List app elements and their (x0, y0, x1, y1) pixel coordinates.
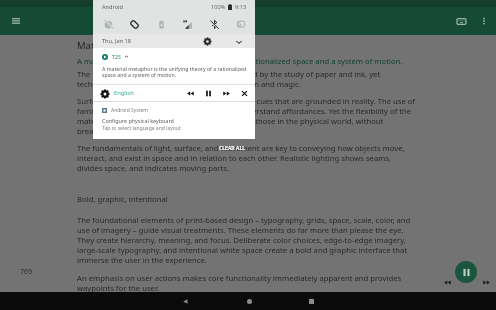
button[interactable]: Rewind (440, 275, 454, 289)
button[interactable]: Dismiss (238, 87, 250, 99)
staticText: Surfaces and edges of the material provi… (77, 96, 416, 136)
button[interactable]: Pause playback (455, 261, 477, 283)
staticText: The fundamentals of light, surface, and … (77, 143, 405, 173)
button[interactable]: Battery saver (153, 16, 169, 32)
button[interactable]: More options (477, 14, 491, 28)
button[interactable]: Wi-Fi off (100, 16, 116, 32)
staticText: The material is grounded in tactile real… (77, 69, 381, 89)
button[interactable]: Recent apps (303, 293, 319, 309)
button[interactable]: Mobile data (179, 16, 195, 32)
staticText: An emphasis on user actions makes core f… (77, 273, 402, 293)
button[interactable]: Expand quick settings (232, 35, 245, 48)
button[interactable]: Auto-rotate (126, 16, 142, 32)
staticText: Bold, graphic, intentional (77, 194, 168, 204)
staticText: Configure physical keyboard (102, 117, 174, 124)
button[interactable]: Android System (93, 102, 255, 139)
staticText: 100% (211, 3, 226, 11)
staticText: A material metaphor is the unifying theo… (102, 65, 247, 79)
button[interactable]: Back (177, 293, 193, 309)
button[interactable]: Home (241, 293, 257, 309)
staticText: A material metaphor is the unifying theo… (77, 56, 403, 66)
staticText: Thu, Jan 18 (102, 37, 131, 45)
button[interactable]: Cast screen (232, 16, 248, 32)
staticText: Android (102, 3, 123, 11)
button[interactable]: Navigation menu (6, 11, 26, 31)
button[interactable]: Settings (201, 35, 214, 48)
staticText: T2S (112, 53, 121, 60)
button[interactable]: Next (220, 87, 232, 99)
button[interactable]: English (114, 87, 134, 99)
button[interactable]: CLEAR ALL (216, 143, 248, 152)
button[interactable]: Pause (202, 87, 214, 99)
staticText: Tap to select language and layout (102, 125, 181, 132)
staticText: Android System (111, 107, 149, 114)
button[interactable]: Notification settings (98, 87, 111, 100)
staticText: Material is the metaphor (77, 39, 188, 52)
button[interactable]: Fast forward (479, 275, 493, 289)
button[interactable]: Keyboard (452, 12, 470, 30)
button[interactable]: Bluetooth off (206, 16, 222, 32)
staticText: The foundational elements of print-based… (77, 215, 411, 265)
staticText: English (114, 89, 134, 97)
staticText: 9:13 (235, 3, 247, 11)
staticText: CLEAR ALL (219, 144, 245, 151)
staticText: 769 (20, 267, 33, 277)
button[interactable]: Previous (184, 87, 196, 99)
